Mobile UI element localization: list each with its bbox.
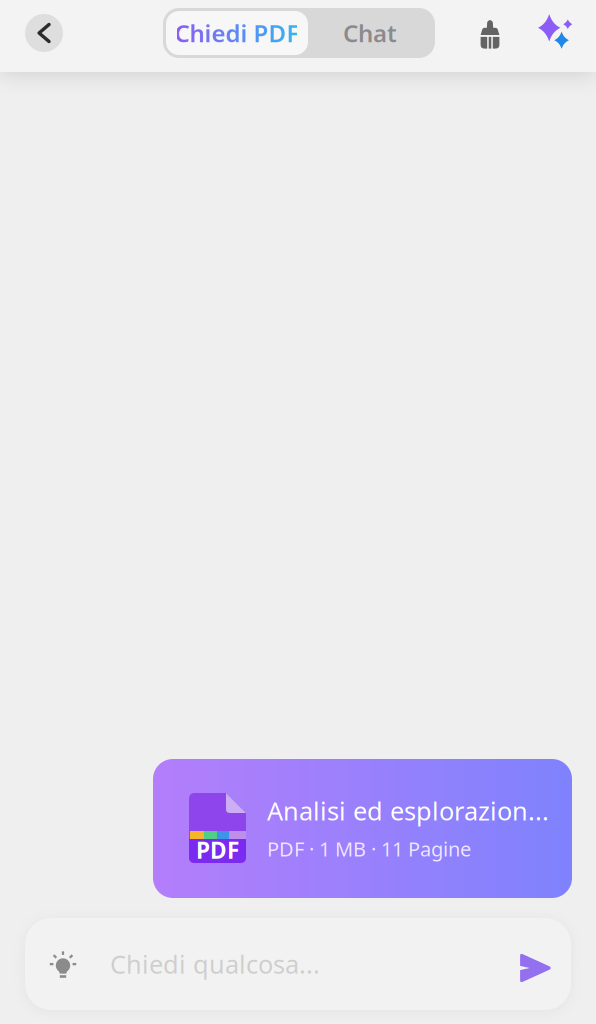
button[interactable]: Chiedi qualcosa... bbox=[110, 944, 510, 984]
button[interactable]: Clear chat bbox=[465, 9, 515, 59]
staticText: Chat bbox=[343, 17, 397, 49]
button[interactable]: Suggestions bbox=[37, 939, 89, 991]
button[interactable]: PDF bbox=[153, 759, 572, 898]
button[interactable]: AI suggestions bbox=[531, 8, 581, 58]
button[interactable]: Send bbox=[509, 942, 561, 994]
staticText: PDF bbox=[196, 835, 239, 865]
staticText: Chiedi qualcosa... bbox=[110, 947, 320, 981]
staticText: Analisi ed esplorazion... bbox=[267, 794, 549, 827]
staticText: PDF · 1 MB · 11 Pagine bbox=[267, 835, 471, 862]
button[interactable]: Back bbox=[19, 8, 69, 58]
button[interactable] bbox=[166, 11, 308, 55]
button[interactable]: Chat bbox=[308, 11, 432, 55]
